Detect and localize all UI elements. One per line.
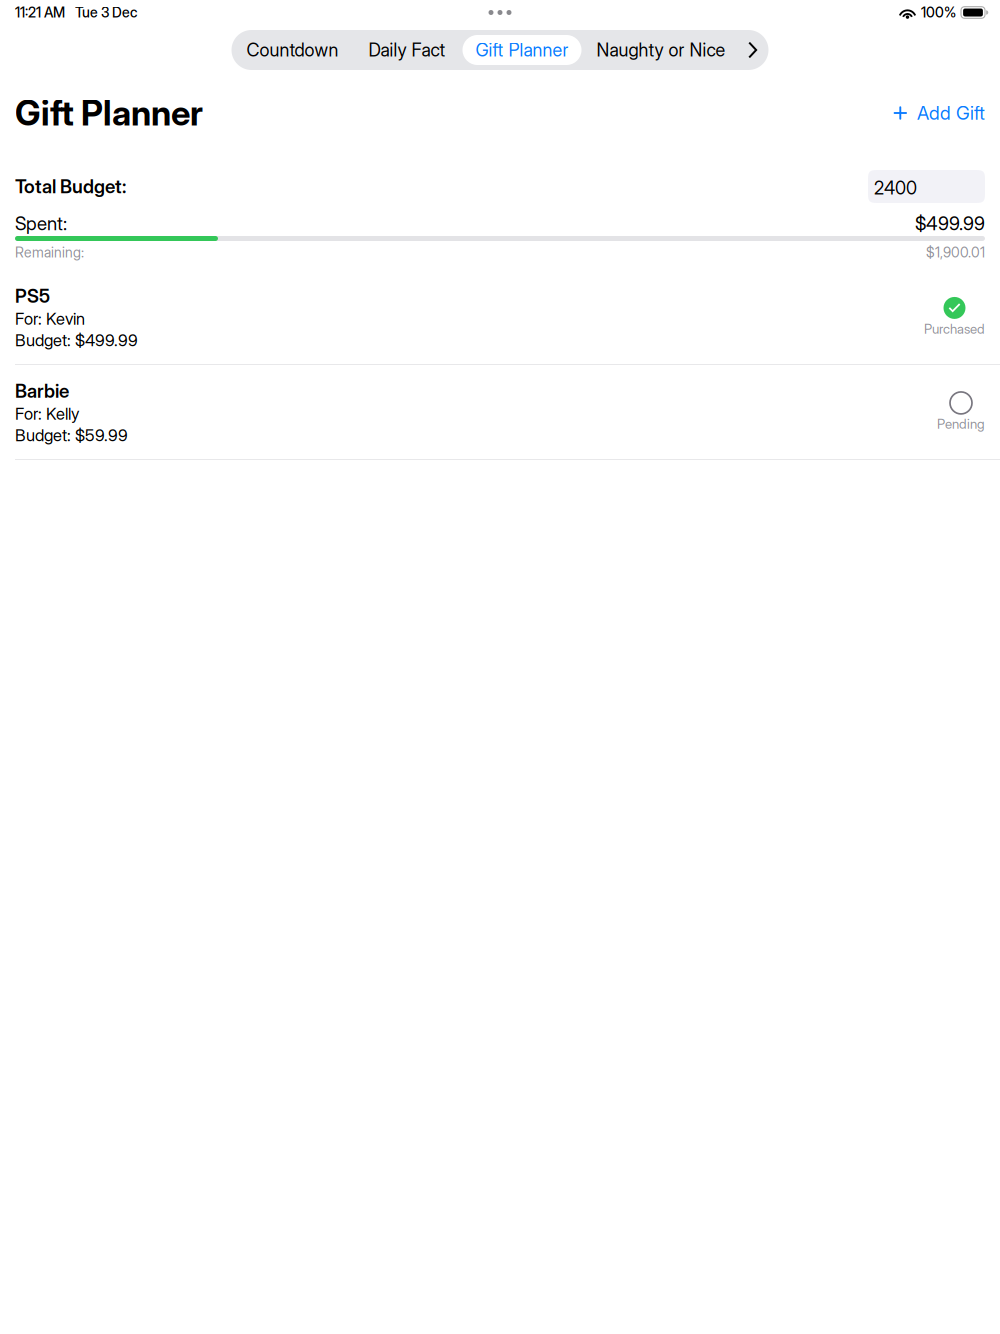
staticText: Remaining: xyxy=(15,244,84,261)
staticText: Spent: xyxy=(15,212,67,235)
staticText: Barbie xyxy=(15,380,69,402)
staticText: For: Kelly xyxy=(15,404,79,424)
button[interactable]: More tabs xyxy=(738,30,768,70)
button[interactable]: 2400 xyxy=(868,170,985,203)
staticText: PS5 xyxy=(15,285,50,307)
staticText: Budget: $499.99 xyxy=(15,330,138,350)
staticText: $499.99 xyxy=(915,212,985,235)
button[interactable]: Daily Fact xyxy=(353,30,460,70)
staticText: Gift Planner xyxy=(15,92,203,134)
staticText: Total Budget: xyxy=(15,175,126,198)
staticText: Naughty or Nice xyxy=(596,39,725,61)
staticText: 100% xyxy=(921,4,956,21)
staticText: 2400 xyxy=(874,177,917,199)
staticText: Purchased xyxy=(924,321,985,337)
staticText: 11:21 AM xyxy=(15,4,65,21)
staticText: $1,900.01 xyxy=(926,244,985,261)
staticText: Pending xyxy=(937,416,985,432)
staticText: Daily Fact xyxy=(368,39,445,61)
staticText: Tue 3 Dec xyxy=(75,4,137,21)
button[interactable]: Barbie xyxy=(0,365,1000,460)
staticText: Add Gift xyxy=(917,102,985,124)
button[interactable]: Add Gift xyxy=(878,92,985,134)
button[interactable]: Naughty or Nice xyxy=(583,30,738,70)
button[interactable]: Countdown xyxy=(231,30,353,70)
staticText: Gift Planner xyxy=(475,39,568,61)
staticText: Budget: $59.99 xyxy=(15,425,128,445)
staticText: Countdown xyxy=(246,39,338,61)
staticText: For: Kevin xyxy=(15,309,85,329)
button[interactable]: PS5 xyxy=(0,270,1000,365)
button[interactable]: Gift Planner xyxy=(460,30,583,70)
